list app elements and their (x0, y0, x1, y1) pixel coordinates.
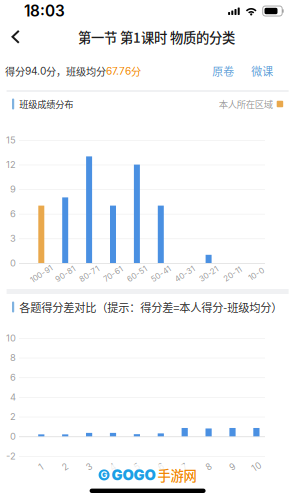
staticText: 手游网 (158, 465, 197, 485)
staticText: 8 (10, 352, 16, 363)
button[interactable]: 返回 (0, 22, 34, 52)
staticText: 7 (182, 462, 187, 472)
staticText: 70-61 (102, 269, 123, 279)
staticText: 15 (6, 134, 16, 146)
staticText: 40-31 (174, 269, 196, 279)
staticText: 原卷 (212, 63, 234, 79)
staticText: 30-21 (198, 269, 219, 279)
staticText: 1 (39, 462, 43, 472)
staticText: 90-81 (54, 269, 76, 279)
button[interactable]: 原卷 (209, 58, 237, 84)
staticText: 6 (158, 462, 163, 472)
staticText: 0 (10, 257, 16, 269)
staticText: -2 (6, 450, 16, 462)
staticText: 10 (6, 332, 16, 344)
staticText: 班级成绩分布 (19, 97, 73, 111)
staticText: 本人所在区域 (219, 97, 273, 111)
staticText: 各题得分差对比（提示：得分差=本人得分-班级均分） (19, 299, 282, 315)
staticText: 8 (206, 462, 211, 472)
staticText: 分 (131, 64, 141, 78)
staticText: 2 (63, 462, 68, 472)
staticText: 6 (10, 208, 16, 219)
staticText: 100-91 (29, 269, 54, 279)
staticText: GOGO (112, 466, 156, 484)
staticText: 9 (10, 184, 16, 195)
button[interactable]: 微课 (248, 58, 276, 84)
staticText: 第一节 第1课时 物质的分类 (78, 27, 235, 47)
staticText: 5 (134, 462, 139, 472)
staticText: 10-0 (248, 269, 265, 279)
staticText: 18:03 (24, 2, 65, 20)
staticText: 80-71 (78, 269, 100, 279)
staticText: 4 (10, 391, 16, 403)
staticText: 分，班级均分 (46, 64, 106, 78)
staticText: 50-41 (150, 269, 172, 279)
staticText: 94.0 (25, 65, 46, 77)
staticText: 6 (10, 372, 16, 383)
staticText: 12 (6, 159, 16, 170)
staticText: 67.76 (106, 65, 131, 77)
staticText: 3 (87, 462, 92, 472)
staticText: 20-11 (222, 269, 242, 279)
staticText: 微课 (251, 63, 273, 79)
staticText: 3 (10, 233, 16, 244)
staticText: G (101, 469, 108, 481)
staticText: 得分 (5, 64, 25, 78)
staticText: 9 (230, 462, 235, 472)
staticText: 4 (110, 462, 116, 472)
staticText: 2 (10, 411, 16, 422)
staticText: 10 (252, 462, 261, 472)
staticText: 0 (10, 431, 16, 442)
staticText: 60-51 (126, 269, 148, 279)
